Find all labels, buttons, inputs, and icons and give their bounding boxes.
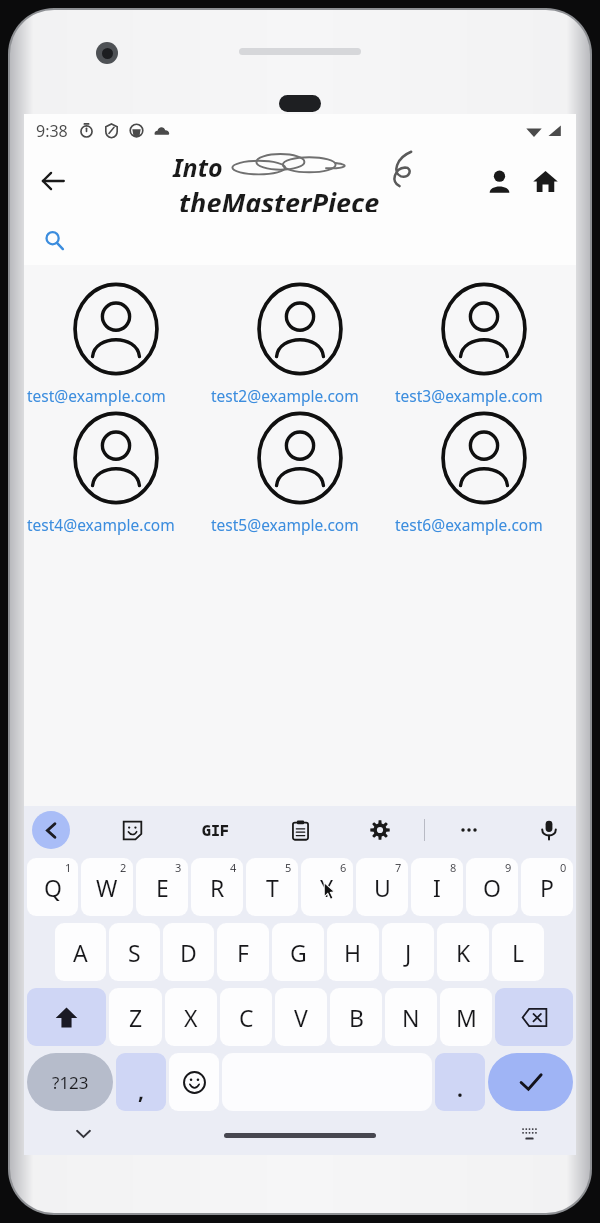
- staticText: test6@example.com: [395, 514, 575, 535]
- staticText: test2@example.com: [211, 385, 391, 406]
- button[interactable]: A: [55, 923, 106, 981]
- button[interactable]: Profile: [476, 158, 522, 204]
- button[interactable]: test4@example.com: [24, 412, 208, 535]
- button[interactable]: K: [437, 923, 489, 981]
- staticText: test5@example.com: [211, 514, 391, 535]
- button[interactable]: Search: [34, 220, 74, 260]
- staticText: 1: [65, 860, 72, 875]
- button[interactable]: Hide keyboard: [68, 1118, 98, 1148]
- button[interactable]: test2@example.com: [208, 283, 392, 406]
- staticText: D: [180, 937, 197, 968]
- staticText: R: [210, 872, 225, 903]
- button[interactable]: Voice input: [530, 811, 568, 849]
- staticText: T: [266, 872, 279, 903]
- button[interactable]: W: [81, 858, 133, 916]
- staticText: L: [512, 937, 525, 968]
- staticText: .: [457, 1075, 463, 1104]
- button[interactable]: H: [327, 923, 379, 981]
- staticText: H: [344, 937, 362, 968]
- staticText: test4@example.com: [27, 514, 207, 535]
- button[interactable]: ?123: [27, 1053, 113, 1111]
- staticText: G: [290, 937, 307, 968]
- button[interactable]: B: [330, 988, 382, 1046]
- button[interactable]: V: [275, 988, 327, 1046]
- button[interactable]: Backspace: [495, 988, 573, 1046]
- staticText: Z: [129, 1002, 143, 1033]
- button[interactable]: X: [165, 988, 217, 1046]
- staticText: 9:38: [36, 120, 68, 142]
- staticText: ,: [138, 1077, 144, 1106]
- button[interactable]: G: [272, 923, 324, 981]
- staticText: theMasterPiece: [179, 184, 380, 212]
- button[interactable]: .: [435, 1053, 485, 1111]
- button[interactable]: Enter: [488, 1053, 573, 1111]
- button[interactable]: U: [356, 858, 408, 916]
- staticText: J: [405, 937, 412, 968]
- staticText: test3@example.com: [395, 385, 575, 406]
- staticText: Into: [173, 150, 223, 184]
- staticText: S: [128, 937, 141, 968]
- staticText: 9: [505, 860, 512, 875]
- staticText: GIF: [202, 820, 230, 840]
- button[interactable]: Back: [30, 158, 76, 204]
- button[interactable]: S: [109, 923, 160, 981]
- staticText: F: [237, 937, 249, 968]
- staticText: U: [374, 872, 391, 903]
- button[interactable]: Z: [109, 988, 162, 1046]
- button[interactable]: ,: [116, 1053, 166, 1111]
- staticText: A: [73, 937, 88, 968]
- staticText: M: [456, 1002, 477, 1033]
- button[interactable]: Y: [301, 858, 353, 916]
- button[interactable]: Q: [27, 858, 78, 916]
- button[interactable]: J: [382, 923, 434, 981]
- staticText: O: [483, 872, 501, 903]
- staticText: P: [540, 872, 554, 903]
- staticText: Q: [44, 872, 62, 903]
- staticText: X: [184, 1002, 198, 1033]
- button[interactable]: N: [385, 988, 437, 1046]
- button[interactable]: Switch keyboard: [516, 1120, 542, 1146]
- button[interactable]: test6@example.com: [392, 412, 576, 535]
- staticText: 2: [120, 860, 127, 875]
- button[interactable]: I: [411, 858, 463, 916]
- button[interactable]: R: [191, 858, 243, 916]
- staticText: C: [239, 1002, 254, 1033]
- staticText: 8: [450, 860, 457, 875]
- staticText: I: [433, 872, 441, 903]
- staticText: ?123: [52, 1071, 89, 1094]
- staticText: 3: [175, 860, 182, 875]
- staticText: W: [96, 872, 118, 903]
- button[interactable]: C: [220, 988, 272, 1046]
- button[interactable]: O: [466, 858, 518, 916]
- staticText: E: [156, 872, 169, 903]
- staticText: N: [402, 1002, 420, 1033]
- button[interactable]: Home: [522, 158, 568, 204]
- button[interactable]: GIF: [193, 811, 239, 849]
- button[interactable]: Shift: [27, 988, 106, 1046]
- button[interactable]: Back: [32, 811, 70, 849]
- button[interactable]: Stickers: [113, 811, 151, 849]
- staticText: 6: [340, 860, 347, 875]
- button[interactable]: E: [136, 858, 188, 916]
- button[interactable]: D: [163, 923, 214, 981]
- staticText: 5: [285, 860, 292, 875]
- button[interactable]: P: [521, 858, 573, 916]
- button[interactable]: T: [246, 858, 298, 916]
- button[interactable]: L: [492, 923, 544, 981]
- button[interactable]: test5@example.com: [208, 412, 392, 535]
- button[interactable]: Emoji: [169, 1053, 219, 1111]
- button[interactable]: Settings: [361, 811, 399, 849]
- button[interactable]: M: [440, 988, 492, 1046]
- staticText: test@example.com: [27, 385, 207, 406]
- button[interactable]: test3@example.com: [392, 283, 576, 406]
- button[interactable]: F: [217, 923, 269, 981]
- staticText: B: [349, 1002, 364, 1033]
- staticText: 4: [230, 860, 237, 875]
- button[interactable]: More options: [450, 811, 488, 849]
- button[interactable]: test@example.com: [24, 283, 208, 406]
- staticText: K: [456, 937, 471, 968]
- staticText: 7: [395, 860, 402, 875]
- staticText: V: [294, 1002, 308, 1033]
- button[interactable]: Clipboard: [281, 811, 319, 849]
